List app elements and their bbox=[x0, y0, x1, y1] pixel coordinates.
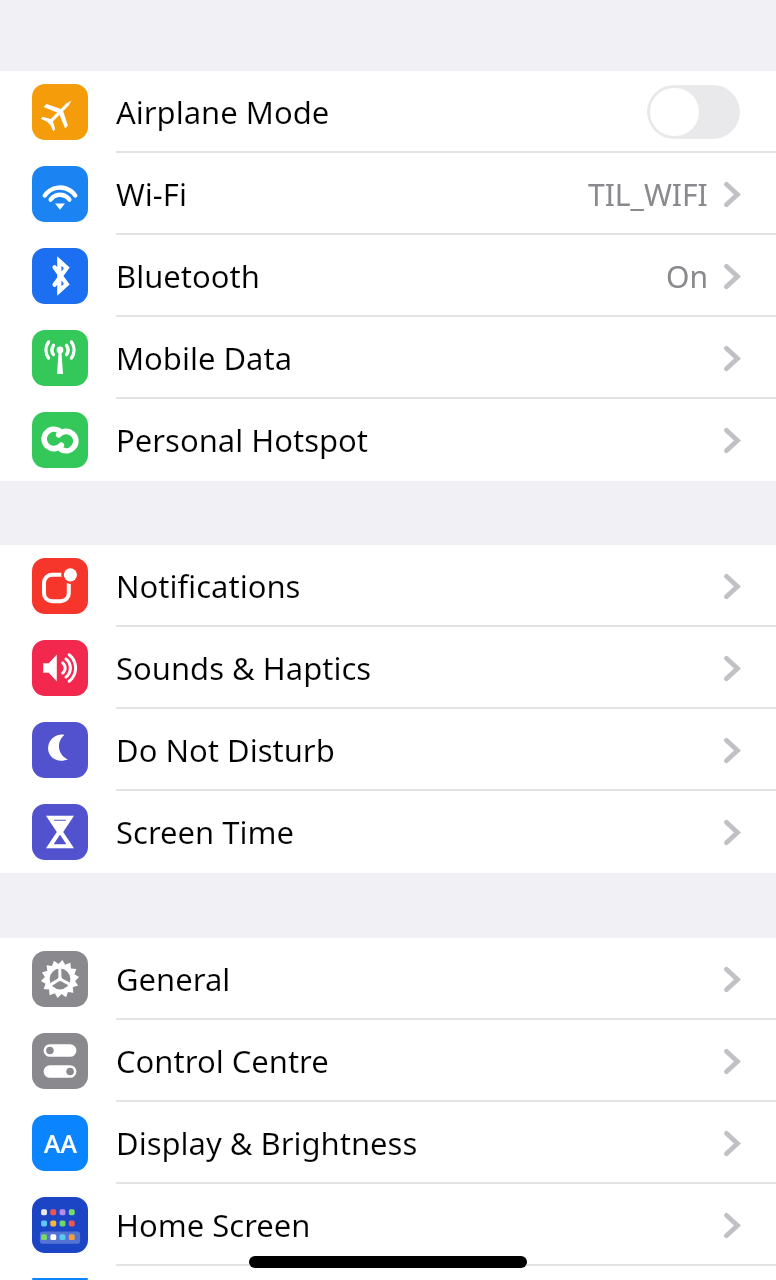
staticText: Display & Brightness bbox=[116, 1122, 418, 1164]
staticText: Mobile Data bbox=[116, 337, 293, 379]
staticText: Sounds & Haptics bbox=[116, 647, 372, 689]
staticText: Airplane Mode bbox=[116, 91, 330, 133]
staticText: Wi-Fi bbox=[116, 173, 187, 215]
staticText: TIL_WIFI bbox=[588, 174, 708, 215]
staticText: On bbox=[666, 256, 708, 297]
button[interactable]: Personal Hotspot bbox=[0, 399, 776, 481]
button[interactable]: Airplane Mode toggle, off bbox=[647, 85, 740, 139]
staticText: Notifications bbox=[116, 565, 301, 607]
button[interactable]: AA bbox=[0, 1102, 776, 1184]
staticText: Personal Hotspot bbox=[116, 419, 369, 461]
staticText: Screen Time bbox=[116, 811, 294, 853]
button[interactable]: Notifications bbox=[0, 545, 776, 627]
button[interactable]: General bbox=[0, 938, 776, 1020]
staticText: Do Not Disturb bbox=[116, 729, 335, 771]
button[interactable]: Airplane Mode bbox=[0, 71, 776, 153]
button[interactable]: Sounds & Haptics bbox=[0, 627, 776, 709]
button[interactable]: Bluetooth bbox=[0, 235, 776, 317]
staticText: AA bbox=[44, 1126, 77, 1160]
button[interactable]: Do Not Disturb bbox=[0, 709, 776, 791]
button[interactable]: Wi-Fi bbox=[0, 153, 776, 235]
staticText: Home Screen bbox=[116, 1204, 311, 1246]
button[interactable]: Control Centre bbox=[0, 1020, 776, 1102]
button[interactable]: Screen Time bbox=[0, 791, 776, 873]
staticText: Control Centre bbox=[116, 1040, 329, 1082]
button[interactable] bbox=[0, 1266, 776, 1280]
staticText: Bluetooth bbox=[116, 255, 260, 297]
button[interactable]: Mobile Data bbox=[0, 317, 776, 399]
staticText: General bbox=[116, 958, 231, 1000]
button[interactable]: Home Screen bbox=[0, 1184, 776, 1266]
